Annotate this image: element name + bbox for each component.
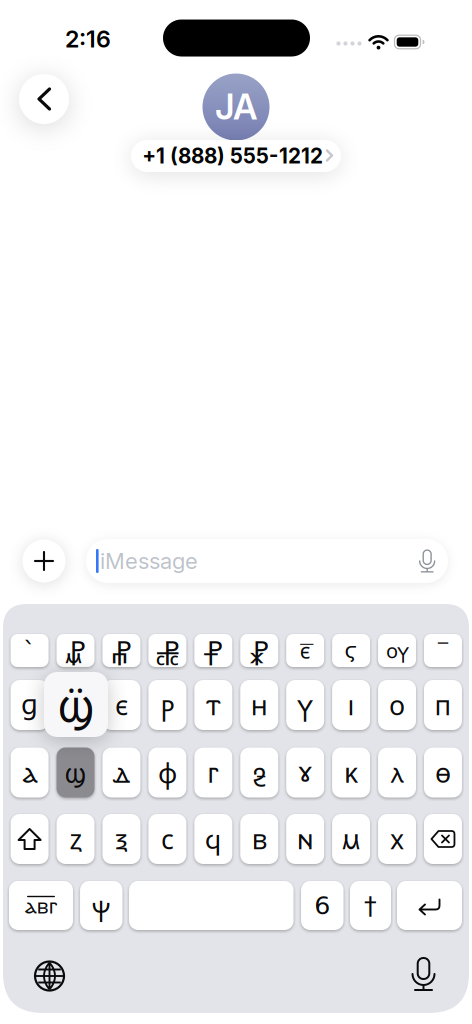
button[interactable]: ⲅ [194, 747, 232, 797]
staticText: ɤ [297, 757, 313, 788]
staticText: ⳥ [65, 631, 86, 669]
button[interactable]: ⲩ [286, 680, 324, 730]
button[interactable]: Back [19, 74, 69, 124]
staticText: ⲕ [344, 754, 358, 791]
staticText: +1 (888) 555-1212 [142, 143, 323, 168]
button[interactable]: ⳦ [102, 634, 140, 667]
button[interactable]: ⲙ [332, 814, 370, 864]
staticText: ⲅ [207, 754, 219, 791]
staticText: ⲯ [92, 887, 111, 924]
button[interactable]: ⲍ [56, 814, 94, 864]
button[interactable]: Delete [424, 814, 462, 864]
staticText: ⲁ [22, 754, 37, 791]
staticText: iMessage [100, 548, 198, 574]
staticText: ⳩ [250, 631, 269, 669]
button[interactable]: ⲯ [80, 881, 122, 930]
staticText: ⲥ [161, 821, 174, 857]
button[interactable]: ⲡ [424, 680, 462, 730]
button[interactable]: ⳩ [240, 634, 278, 667]
button[interactable]: ⲥ [148, 814, 186, 864]
staticText: ⳧ [155, 631, 179, 669]
button[interactable]: Dictate [410, 957, 436, 991]
button[interactable]: Next keyboard [35, 961, 64, 990]
staticText: ⲙ [341, 821, 361, 857]
button[interactable]: ⲟⲩ [378, 634, 416, 667]
button[interactable]: ⲉ [102, 680, 140, 730]
button[interactable]: ⲛ [286, 814, 324, 864]
staticText: JA [215, 86, 257, 128]
staticText: ϛ [345, 638, 358, 663]
button[interactable]: ⲫ [148, 747, 186, 797]
button[interactable]: ɡ [11, 680, 49, 730]
staticText: ϥ [205, 821, 222, 857]
staticText: ⲫ [158, 754, 177, 791]
staticText: ⳨ [204, 631, 223, 669]
button[interactable]: ⲭ [378, 814, 416, 864]
staticText: ⲗ [391, 754, 403, 791]
staticText: ⲱ [64, 687, 86, 723]
button[interactable]: ϣ [56, 747, 94, 797]
button[interactable]: Letters [9, 881, 73, 930]
button[interactable]: ⲱ [56, 680, 94, 730]
button[interactable]: ⲧ [194, 680, 232, 730]
staticText: ⲧ [206, 687, 221, 723]
button[interactable]: ⲁ [11, 747, 49, 797]
button[interactable]: ɤ [286, 747, 324, 797]
button[interactable]: Space [129, 881, 294, 930]
button[interactable]: ` [11, 634, 49, 667]
button[interactable]: ⲗ [378, 747, 416, 797]
staticText: ⲉ̅ [300, 636, 311, 665]
staticText: ⲭ [390, 821, 404, 857]
button[interactable]: ⲑ [424, 747, 462, 797]
staticText: ⲟⲩ [386, 637, 408, 664]
button[interactable]: ⲟ [378, 680, 416, 730]
staticText: ⲓ [348, 687, 355, 723]
button[interactable]: ⳧ [148, 634, 186, 667]
button[interactable]: ‾ [424, 634, 462, 667]
button[interactable]: ⲣ [148, 680, 186, 730]
staticText: † [364, 891, 377, 920]
button[interactable]: ⲉ̅ [286, 634, 324, 667]
button[interactable]: † [350, 881, 391, 930]
staticText: ‾ [438, 639, 448, 662]
staticText: ɡ [21, 689, 38, 720]
staticText: ⲡ [434, 687, 451, 723]
staticText: ` [23, 636, 36, 665]
button[interactable]: ⳥ [56, 634, 94, 667]
button[interactable]: ⳨ [194, 634, 232, 667]
button[interactable]: ⲝ [102, 814, 140, 864]
staticText: ⲍ [69, 821, 81, 857]
staticText: ⲩ [298, 687, 312, 723]
staticText: ϣ [64, 754, 86, 791]
button[interactable]: 6 [301, 881, 344, 930]
button[interactable]: ⳉ [240, 747, 278, 797]
staticText: ⲝ [115, 821, 128, 857]
staticText: ⲛ [297, 821, 314, 857]
button[interactable]: Shift [11, 814, 49, 864]
button[interactable]: ⲕ [332, 747, 370, 797]
button[interactable]: Contact info +1 (888) 555-1212 [131, 140, 341, 172]
staticText: ⳉ [252, 754, 266, 791]
button[interactable]: Return [397, 881, 462, 930]
staticText: ⲟ [389, 687, 405, 723]
staticText: ⲁⲃⲅ [24, 891, 57, 919]
staticText: ⲣ [160, 687, 174, 723]
button[interactable]: ϥ [194, 814, 232, 864]
button[interactable]: iMessage text field [86, 539, 448, 583]
staticText: 2:16 [65, 25, 111, 53]
staticText: ⲃ [252, 821, 267, 857]
button[interactable]: Contact JA [202, 73, 269, 140]
staticText: ⲉ [115, 687, 128, 723]
staticText: ϣ̈ [57, 674, 94, 735]
button[interactable]: Add attachment [22, 539, 65, 582]
button[interactable]: ⲏ [240, 680, 278, 730]
staticText: ⳦ [111, 631, 131, 669]
staticText: 6 [314, 891, 330, 920]
staticText: ⲇ [112, 754, 130, 791]
staticText: ⲏ [251, 687, 268, 723]
button[interactable]: ⲃ [240, 814, 278, 864]
button[interactable]: ⲓ [332, 680, 370, 730]
button[interactable]: ϛ [332, 634, 370, 667]
button[interactable]: ⲇ [102, 747, 140, 797]
staticText: ⲑ [435, 754, 451, 791]
